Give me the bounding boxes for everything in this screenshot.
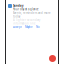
staticText: Events, reminders and more today <box>13 11 51 18</box>
staticText: A lighter secondary information line <box>13 18 40 25</box>
staticText: Maybe <box>25 25 33 29</box>
staticText: Your day at a glance <box>13 7 39 11</box>
button[interactable]: Sunday <box>6 0 58 31</box>
button[interactable]: Compose <box>49 55 56 62</box>
staticText: No <box>36 25 40 29</box>
staticText: Sunday <box>13 4 24 7</box>
staticText: Accept <box>13 25 22 29</box>
